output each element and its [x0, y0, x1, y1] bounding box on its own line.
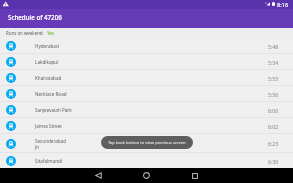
staticText: Necklace Road — [35, 91, 67, 97]
staticText: 5:55 — [268, 75, 279, 82]
button[interactable]: Recent apps — [187, 168, 202, 183]
staticText: Secunderabad Jn — [35, 138, 67, 150]
button[interactable]: Secunderabad Jn — [0, 134, 293, 153]
staticText: Runs on weekend: — [6, 30, 44, 36]
staticText: Hyderabad — [35, 43, 59, 49]
staticText: 6:02 — [268, 123, 279, 130]
staticText: 5:56 — [268, 91, 279, 98]
button[interactable]: Lakdikapul — [0, 54, 293, 70]
button[interactable]: Back — [91, 168, 106, 183]
staticText: Schedule of 47206 — [8, 13, 62, 21]
staticText: Tap back button to view previous screen — [108, 140, 186, 146]
staticText: 6:00 — [268, 107, 279, 114]
staticText: 5:54 — [268, 59, 279, 66]
staticText: 6:30 — [268, 158, 279, 165]
button[interactable]: Necklace Road — [0, 86, 293, 102]
staticText: Sitafalmandi — [35, 158, 63, 164]
button[interactable]: Hyderabad — [0, 38, 293, 54]
staticText: Yes — [47, 30, 54, 36]
staticText: 6:23 — [268, 140, 279, 147]
button[interactable]: Home — [139, 168, 154, 183]
button[interactable]: James Street — [0, 118, 293, 134]
button[interactable]: Khairatabad — [0, 70, 293, 86]
staticText: Khairatabad — [35, 75, 62, 81]
staticText: Sanjeevaiah Park — [35, 107, 72, 113]
button[interactable]: Sanjeevaiah Park — [0, 102, 293, 118]
staticText: 8:16 — [277, 1, 289, 9]
staticText: James Street — [35, 123, 62, 129]
staticText: Lakdikapul — [35, 59, 59, 65]
staticText: 5:48 — [268, 43, 279, 50]
button[interactable]: Sitafalmandi — [0, 153, 293, 169]
